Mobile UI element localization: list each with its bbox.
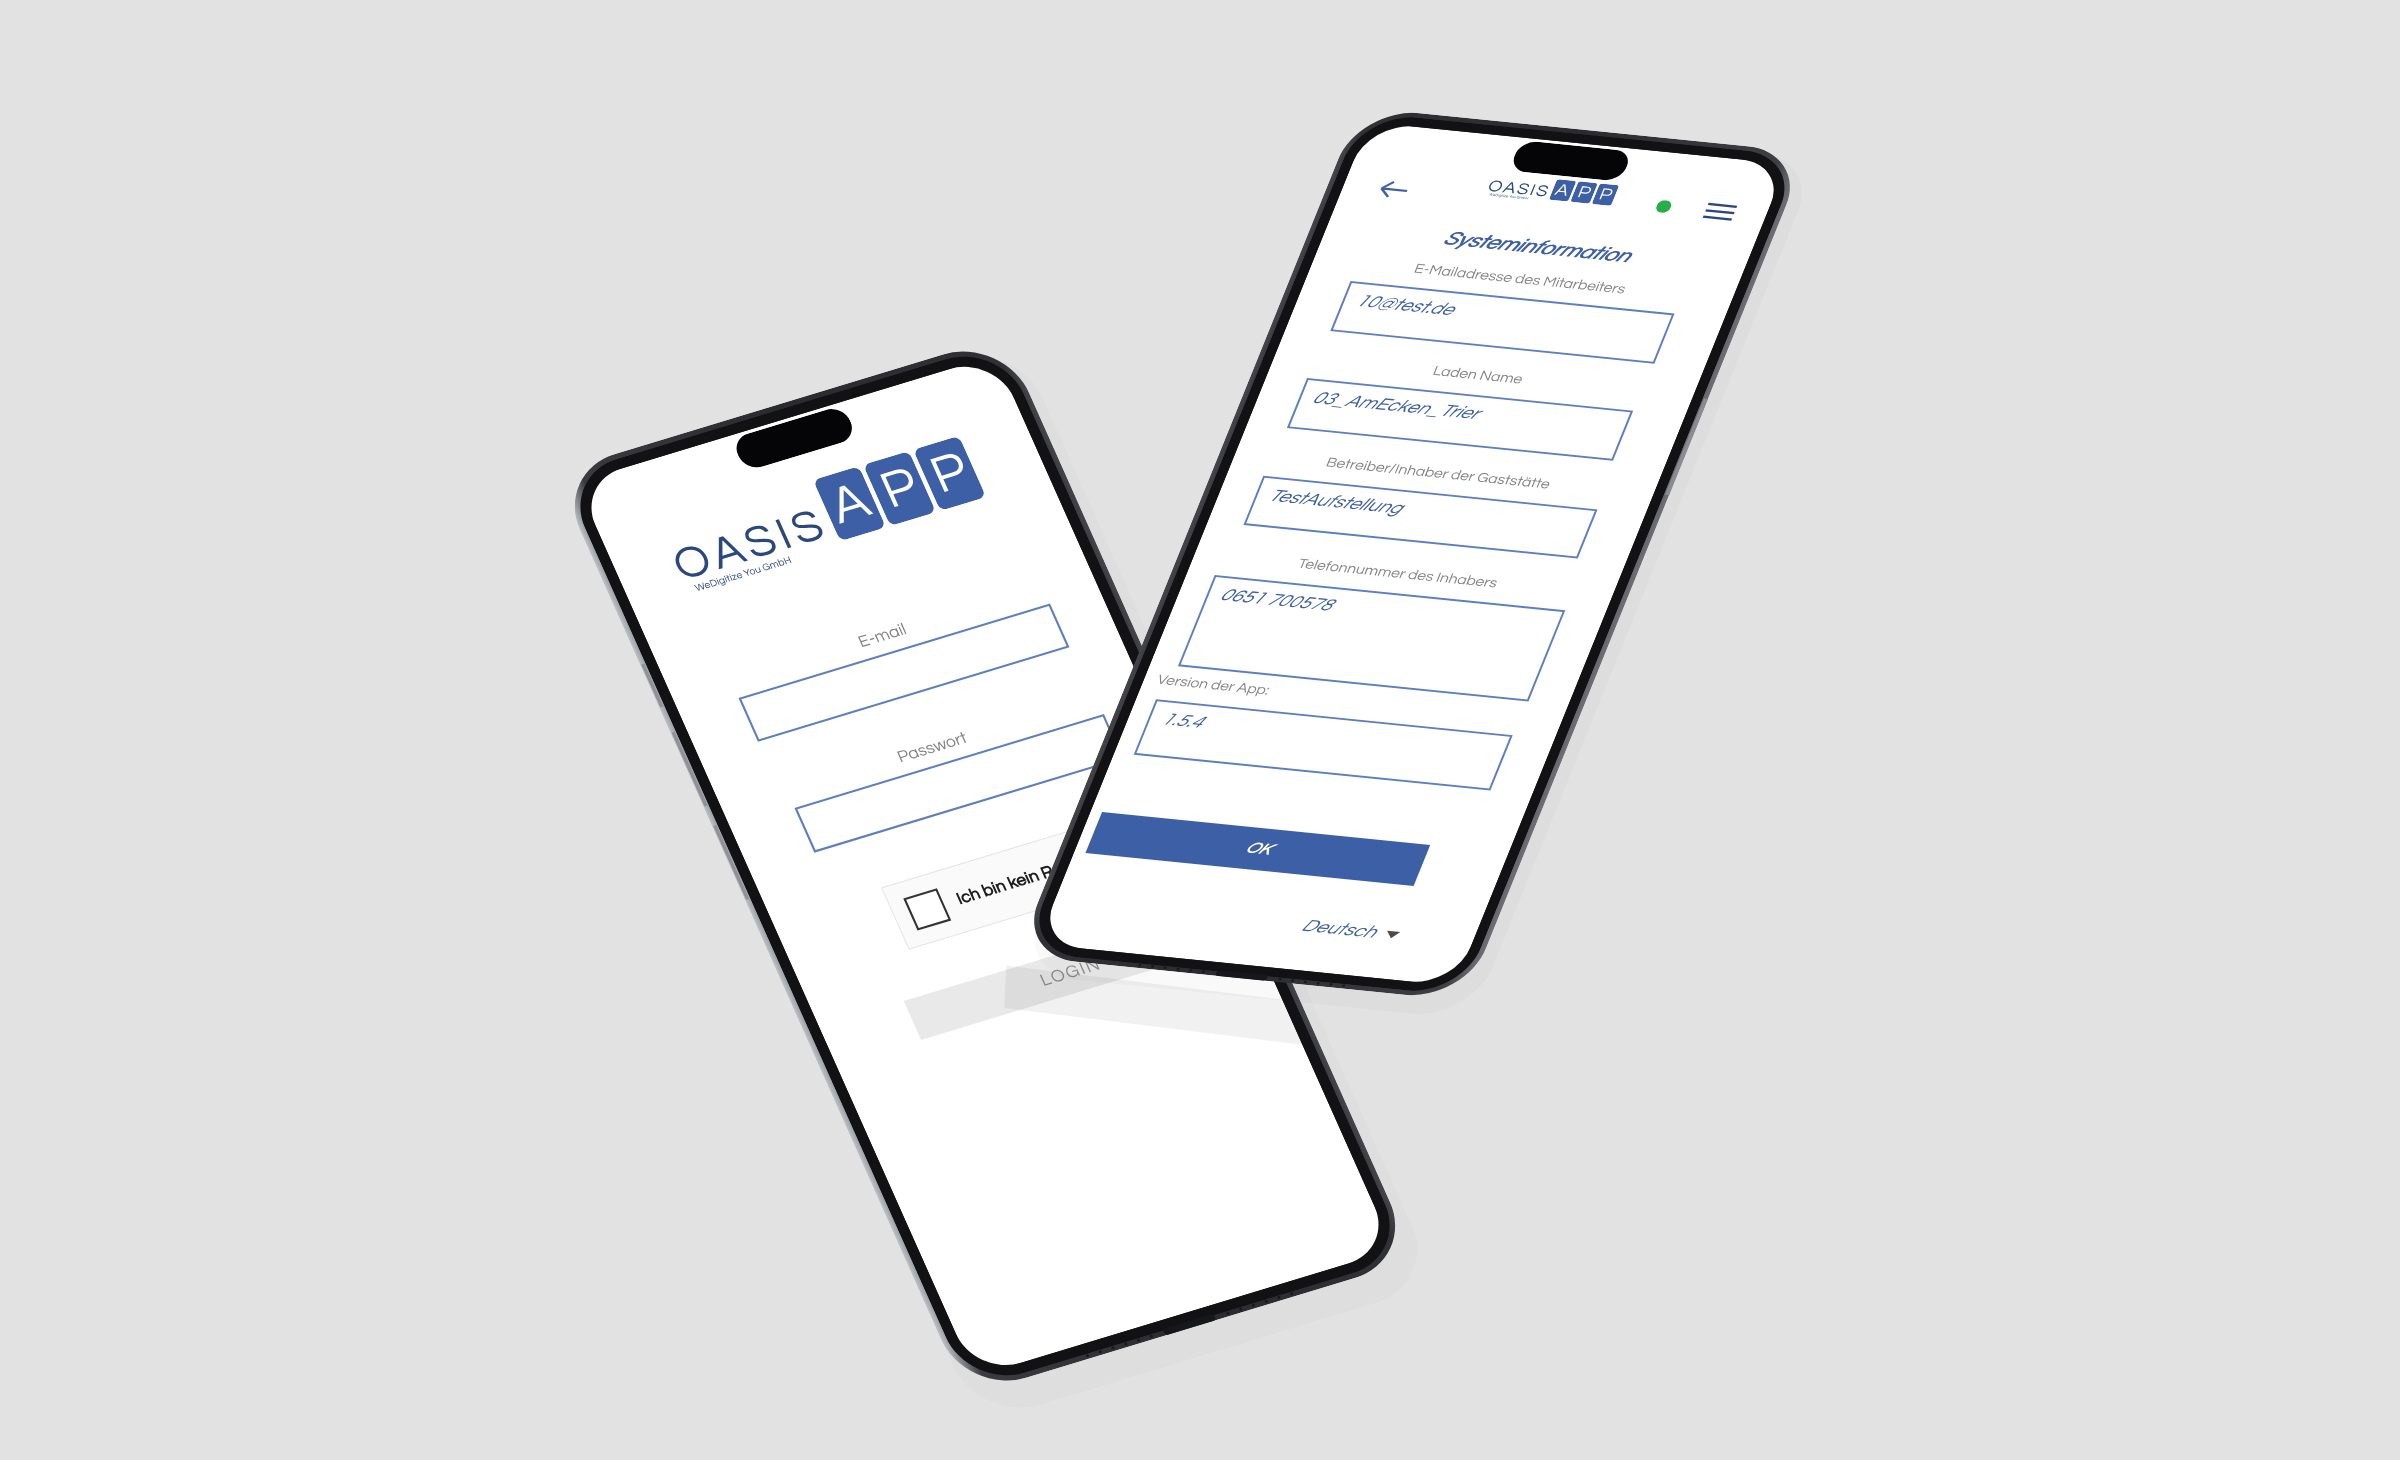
staticText: Laden Name (1306, 351, 1650, 399)
staticText: 1.5.4 (1158, 710, 1206, 732)
button[interactable]: LOGIN (904, 905, 1238, 1040)
staticText: P (873, 459, 928, 519)
staticText: Version der App: (1155, 673, 1529, 723)
staticText: P (1596, 186, 1615, 204)
staticText: OK (1242, 840, 1273, 858)
staticText: Telefonnummer des Inhabers (1214, 548, 1582, 598)
staticText: Systeminformation (1323, 216, 1749, 278)
staticText: P (923, 443, 978, 504)
staticText: Deutsch (1299, 916, 1379, 941)
staticText: Ich bin kein Roboter (954, 848, 1105, 908)
staticText: 10@test.de (1353, 291, 1457, 319)
button[interactable]: 0651 700578 (1178, 575, 1565, 701)
button[interactable]: TestAufstellung (1243, 476, 1597, 559)
button[interactable]: 03_AmEcken_Trier (1287, 378, 1633, 461)
staticText: 0651 700578 (1217, 585, 1335, 614)
staticText: WeDigitize You GmbH (693, 554, 794, 593)
button[interactable]: Deutsch (1297, 913, 1404, 947)
button[interactable]: Back (1369, 173, 1416, 206)
button[interactable] (794, 714, 1124, 853)
staticText: Betreiber/Inhaber der Gaststätte (1262, 449, 1614, 498)
staticText: A (822, 473, 879, 535)
button[interactable]: 10@test.de (1330, 281, 1675, 364)
staticText: OASIS (666, 500, 836, 589)
button[interactable]: Ich bin kein Roboter (896, 798, 1205, 945)
staticText: OASIS (1486, 177, 1553, 199)
button[interactable]: Menu (1699, 196, 1741, 226)
staticText: E-mail (669, 564, 1095, 707)
button[interactable] (738, 603, 1069, 742)
staticText: E-Mailadresse des Mitarbeiters (1349, 255, 1691, 303)
staticText: Passwort (719, 676, 1145, 819)
staticText: A (1553, 181, 1573, 199)
button[interactable]: OK (1085, 812, 1430, 886)
staticText: P (1575, 183, 1594, 202)
staticText: 03_AmEcken_Trier (1309, 388, 1482, 423)
staticText: LOGIN (1037, 954, 1105, 990)
staticText: TestAufstellung (1266, 486, 1405, 517)
button[interactable]: 1.5.4 (1134, 699, 1513, 791)
staticText: WeDigitize You GmbH (1489, 193, 1530, 200)
button[interactable]: Online status (1648, 196, 1679, 217)
staticText: Systeminformation (1324, 216, 1749, 278)
